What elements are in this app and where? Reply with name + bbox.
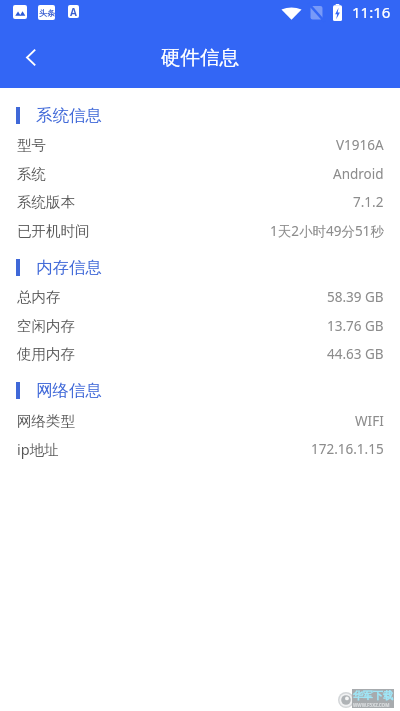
staticText: 网络信息: [36, 380, 102, 401]
staticText: 1天2小时49分51秒: [270, 222, 384, 240]
staticText: 13.76 GB: [327, 317, 384, 335]
button[interactable]: 总内存: [0, 282, 400, 311]
staticText: 11:16: [352, 2, 391, 22]
staticText: Android: [333, 165, 384, 183]
staticText: 7.1.2: [353, 193, 384, 211]
staticText: 总内存: [17, 288, 61, 306]
staticText: 44.63 GB: [327, 345, 384, 363]
staticText: WIFI: [355, 412, 384, 430]
staticText: 58.39 GB: [327, 288, 384, 306]
staticText: 华军下载: [353, 689, 393, 702]
button[interactable]: 系统版本: [0, 187, 400, 216]
staticText: 系统版本: [17, 193, 75, 211]
staticText: 已开机时间: [17, 222, 90, 240]
staticText: A: [70, 5, 77, 18]
button[interactable]: ip地址: [0, 434, 400, 463]
button[interactable]: 使用内存: [0, 339, 400, 368]
staticText: 系统: [17, 165, 46, 183]
button[interactable]: 网络类型: [0, 406, 400, 435]
button[interactable]: 已开机时间: [0, 216, 400, 245]
button[interactable]: Back: [10, 36, 52, 78]
staticText: 使用内存: [17, 345, 75, 363]
staticText: ip地址: [17, 439, 59, 459]
button[interactable]: 空闲内存: [0, 311, 400, 340]
staticText: V1916A: [336, 136, 384, 154]
staticText: WWW.F5XZ.COM: [353, 702, 390, 708]
button[interactable]: 系统: [0, 159, 400, 188]
staticText: 空闲内存: [17, 317, 75, 335]
staticText: 硬件信息: [161, 45, 239, 70]
staticText: 系统信息: [36, 105, 102, 126]
button[interactable]: 型号: [0, 130, 400, 159]
staticText: 内存信息: [36, 257, 102, 278]
staticText: 172.16.1.15: [311, 440, 384, 458]
staticText: 头条: [39, 8, 55, 18]
staticText: 型号: [17, 136, 46, 154]
staticText: 网络类型: [17, 412, 75, 430]
